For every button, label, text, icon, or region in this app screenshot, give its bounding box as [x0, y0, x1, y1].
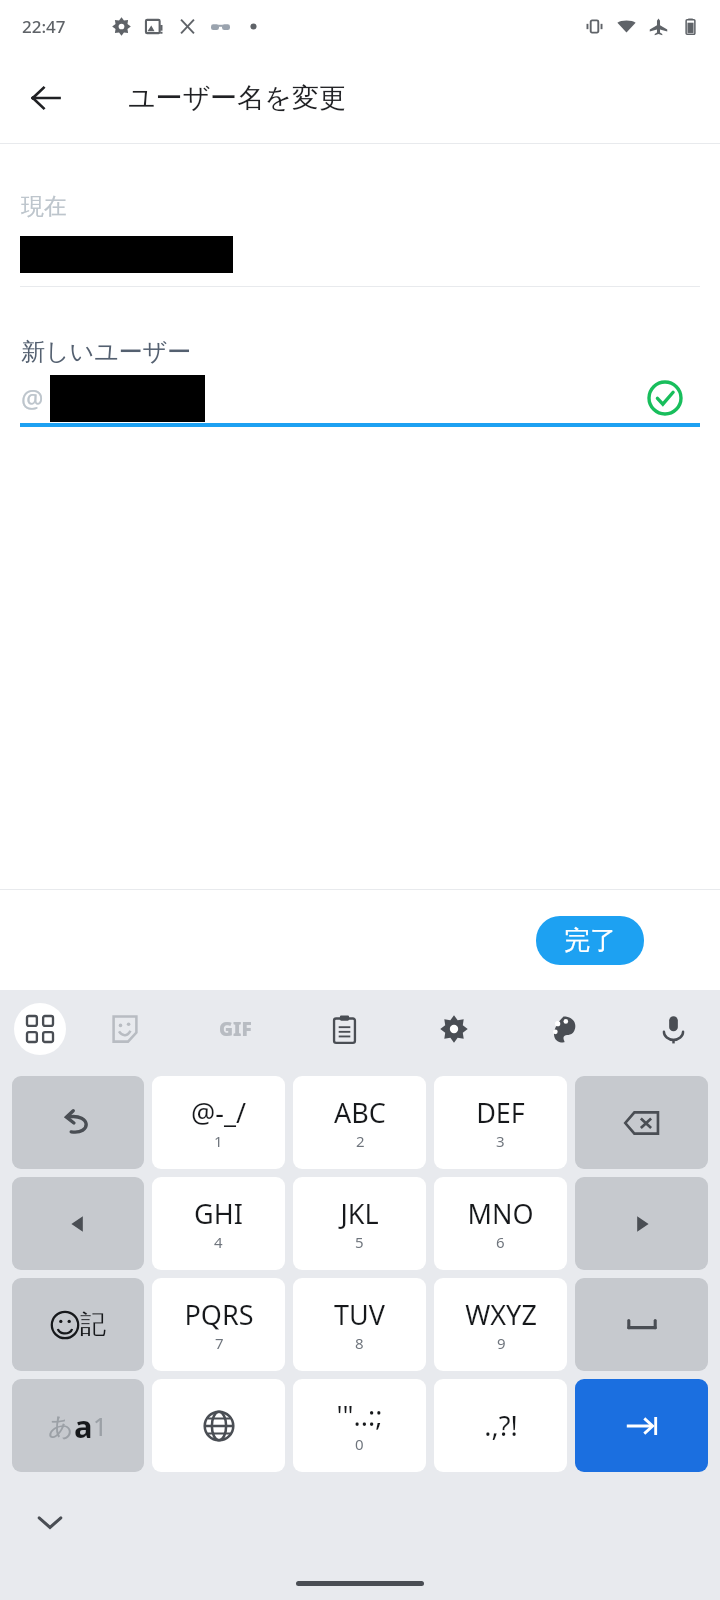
button[interactable]: 左	[12, 1177, 144, 1270]
button[interactable]: 設定	[429, 1004, 479, 1054]
button[interactable]: 言語切替	[152, 1379, 285, 1472]
other: 利用可能	[647, 380, 683, 416]
staticText: 22:47	[22, 15, 66, 38]
button[interactable]: 元に戻す	[12, 1076, 144, 1169]
button[interactable]: ABC	[293, 1076, 426, 1169]
staticText: ユーザー名を変更	[128, 81, 346, 115]
staticText: TUV	[334, 1296, 385, 1333]
staticText: WXYZ	[465, 1296, 537, 1333]
staticText: ABC	[334, 1094, 386, 1131]
staticText: 2	[356, 1131, 365, 1151]
button[interactable]: GHI	[152, 1177, 285, 1270]
button[interactable]: スペース	[575, 1278, 708, 1371]
button[interactable]: 次へ	[575, 1379, 708, 1472]
button[interactable]: 右	[575, 1177, 708, 1270]
button[interactable]: @-_/	[152, 1076, 285, 1169]
staticText: 5	[355, 1232, 364, 1252]
staticText: 7	[215, 1333, 224, 1353]
button[interactable]: 音声入力	[648, 1004, 698, 1054]
staticText: PQRS	[184, 1296, 254, 1333]
button[interactable]: DEF	[434, 1076, 567, 1169]
button[interactable]: ステッカー	[100, 1004, 150, 1054]
button[interactable]: 記	[12, 1278, 144, 1371]
button[interactable]: クリップボード	[319, 1004, 369, 1054]
staticText: 1	[93, 1409, 108, 1443]
staticText: DEF	[476, 1094, 525, 1131]
staticText: 0	[355, 1434, 364, 1454]
button[interactable]: GIF	[210, 1004, 260, 1054]
staticText: あ	[48, 1411, 74, 1442]
button[interactable]: ツール	[14, 1003, 66, 1055]
staticText: a	[74, 1405, 93, 1447]
staticText: 6	[496, 1232, 505, 1252]
staticText: 記	[80, 1308, 106, 1341]
staticText: 9	[497, 1333, 506, 1353]
button[interactable]: 戻る	[16, 68, 76, 128]
button[interactable]: .,?!	[434, 1379, 567, 1472]
staticText: .,?!	[484, 1407, 518, 1444]
staticText: GHI	[194, 1195, 243, 1232]
staticText: @	[21, 381, 44, 415]
button[interactable]: 完了	[536, 916, 644, 965]
button[interactable]: 削除	[575, 1076, 708, 1169]
staticText: 完了	[564, 924, 616, 957]
other: キーボードを閉じる	[33, 1505, 67, 1539]
staticText: 現在	[21, 192, 67, 221]
button[interactable]: テーマ	[538, 1004, 588, 1054]
button[interactable]: PQRS	[152, 1278, 285, 1371]
button[interactable]: MNO	[434, 1177, 567, 1270]
staticText: 新しいユーザー	[21, 337, 192, 367]
staticText: 3	[496, 1131, 505, 1151]
staticText: 1	[214, 1131, 223, 1151]
staticText: JKL	[340, 1195, 379, 1232]
button[interactable]: '"..:;	[293, 1379, 426, 1472]
button[interactable]: あ	[12, 1379, 144, 1472]
button[interactable]: WXYZ	[434, 1278, 567, 1371]
staticText: GIF	[219, 1016, 252, 1042]
button[interactable]: JKL	[293, 1177, 426, 1270]
staticText: '"..:;	[336, 1397, 383, 1434]
staticText: MNO	[467, 1195, 534, 1232]
staticText: 4	[214, 1232, 223, 1252]
staticText: @-_/	[191, 1094, 246, 1131]
button[interactable]: TUV	[293, 1278, 426, 1371]
staticText: 8	[355, 1333, 364, 1353]
